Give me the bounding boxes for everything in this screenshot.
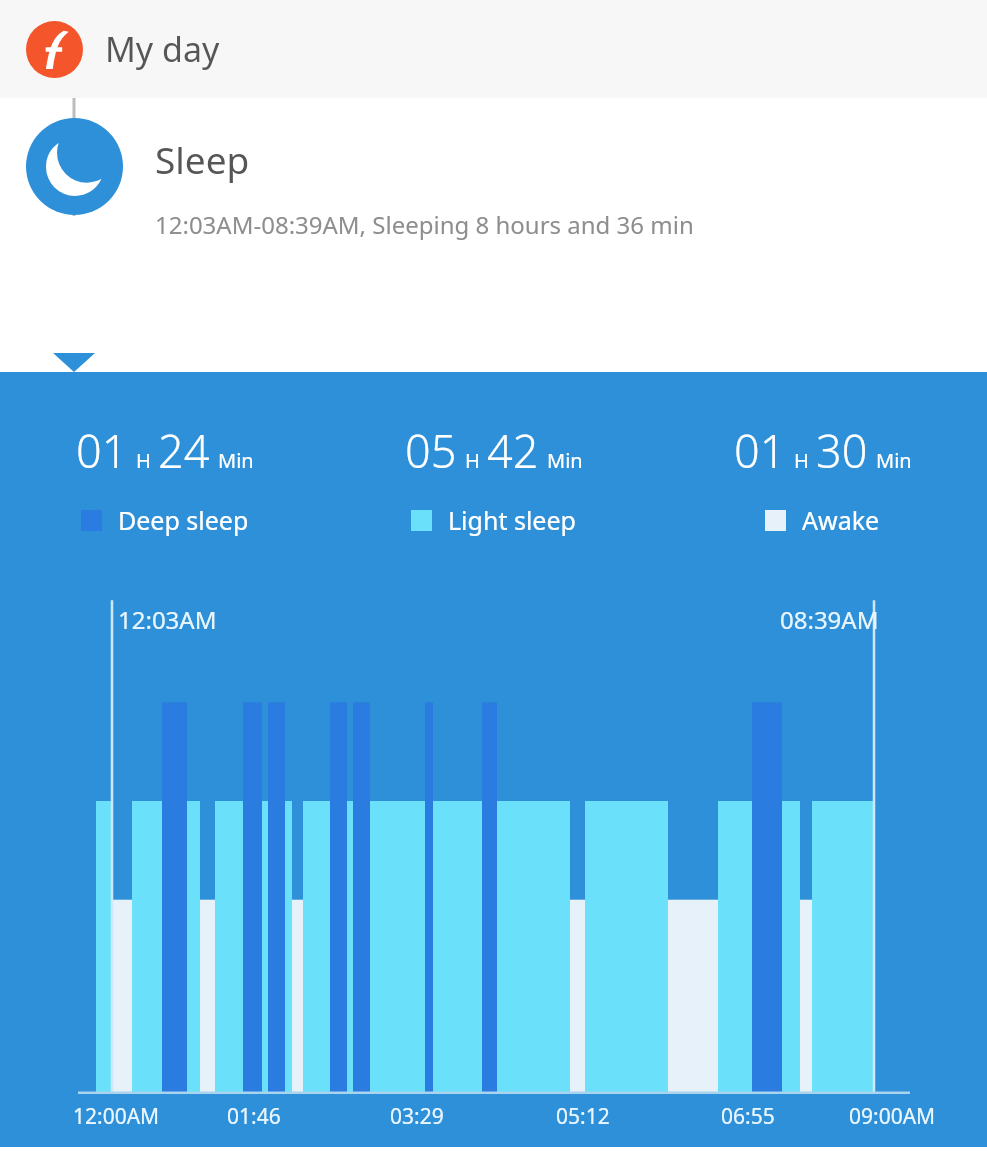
- staticText: 12:03AM-08:39AM, Sleeping 8 hours and 36…: [155, 208, 694, 241]
- staticText: Min: [547, 447, 583, 474]
- staticText: 12:00AM: [73, 1102, 160, 1131]
- staticText: 09:00AM: [849, 1102, 936, 1131]
- staticText: 24: [158, 420, 210, 481]
- staticText: Light sleep: [448, 503, 576, 537]
- staticText: 12:03AM: [118, 603, 217, 636]
- staticText: 42: [487, 420, 539, 481]
- staticText: Min: [218, 447, 254, 474]
- staticText: 03:29: [390, 1102, 444, 1131]
- staticText: Awake: [802, 503, 880, 537]
- button[interactable]: 01: [658, 420, 987, 537]
- staticText: Sleep: [155, 134, 250, 184]
- button[interactable]: Sleep: [26, 118, 987, 241]
- staticText: 01: [76, 420, 128, 481]
- staticText: 05:12: [556, 1102, 610, 1131]
- staticText: 01: [734, 420, 786, 481]
- staticText: 08:39AM: [780, 603, 879, 636]
- staticText: 05: [405, 420, 457, 481]
- button[interactable]: 01: [0, 420, 329, 537]
- staticText: 01:46: [227, 1102, 281, 1131]
- staticText: 06:55: [721, 1102, 775, 1131]
- staticText: H: [794, 447, 809, 474]
- staticText: H: [136, 447, 151, 474]
- staticText: 30: [816, 420, 868, 481]
- button[interactable]: App logo: [0, 0, 987, 98]
- staticText: Deep sleep: [118, 503, 249, 537]
- button[interactable]: 05: [329, 420, 658, 537]
- staticText: Min: [876, 447, 912, 474]
- staticText: H: [465, 447, 480, 474]
- staticText: My day: [105, 26, 220, 72]
- other: App logo: [26, 21, 83, 78]
